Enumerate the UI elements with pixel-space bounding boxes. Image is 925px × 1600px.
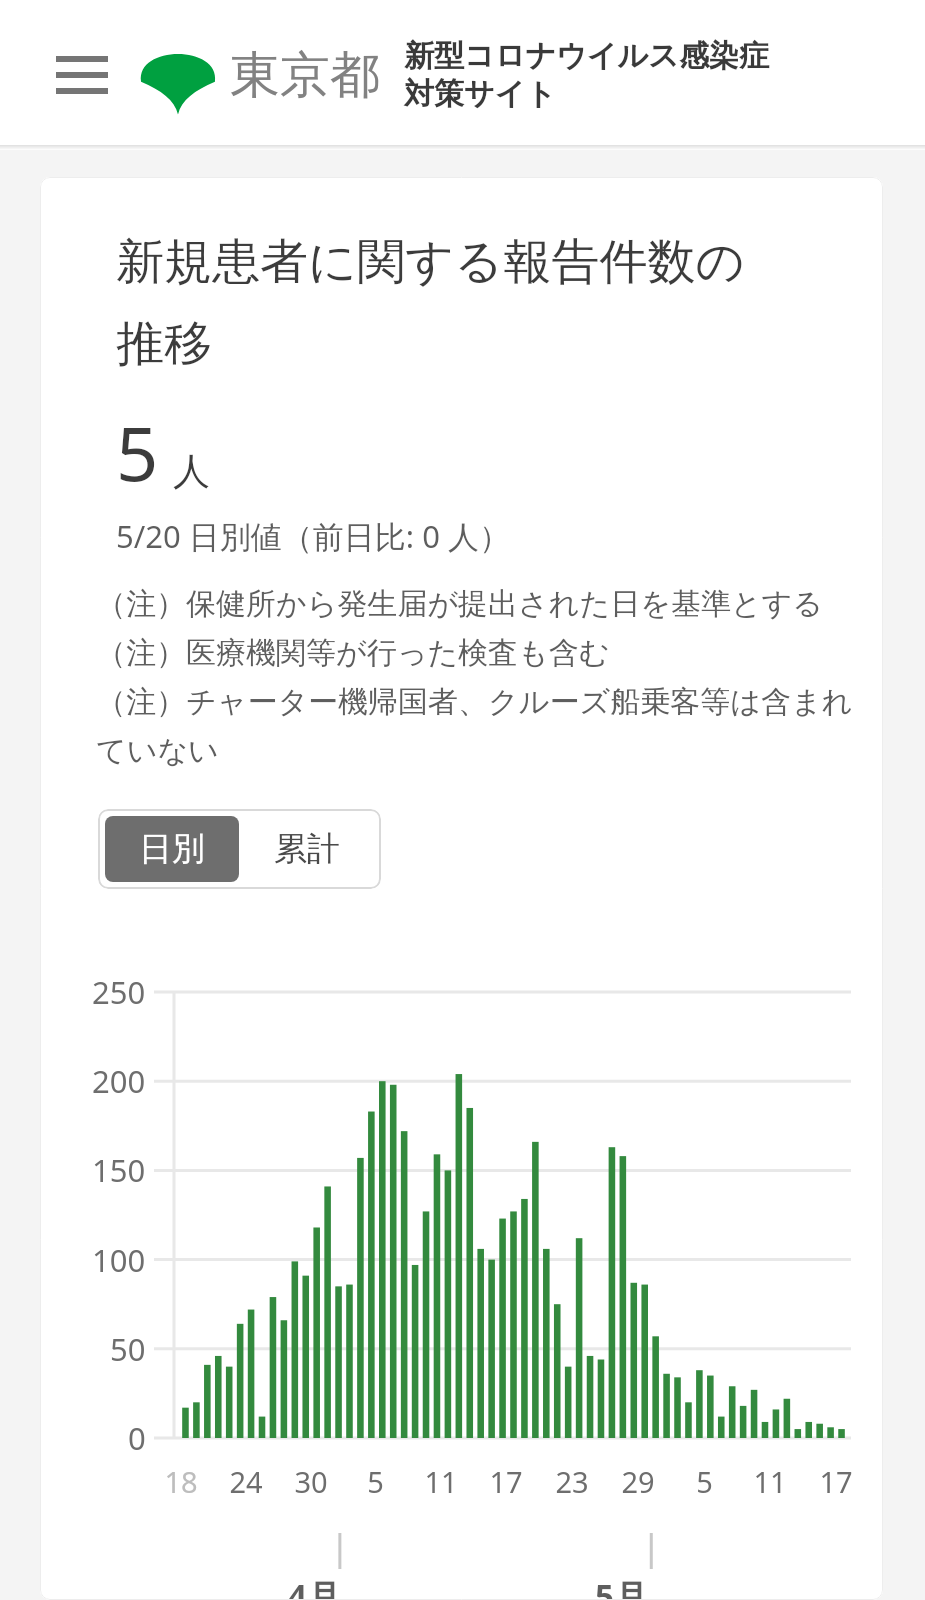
staticText: 24 (229, 1462, 263, 1501)
staticText: 人 (173, 448, 210, 495)
button[interactable]: 累計 (239, 816, 374, 882)
staticText: 東京都 (230, 44, 380, 107)
staticText: 11 (753, 1462, 787, 1501)
staticText: 5 (367, 1462, 384, 1501)
staticText: 5 (116, 402, 159, 503)
staticText: 30 (294, 1462, 328, 1501)
staticText: 0 (128, 1417, 146, 1459)
staticText: 200 (92, 1060, 146, 1102)
staticText: （注）保健所から発生届が提出された日を基準とする （注）医療機関等が行った検査も… (96, 585, 857, 769)
staticText: 29 (621, 1462, 655, 1501)
staticText: 累計 (274, 828, 340, 870)
staticText: 23 (555, 1462, 589, 1501)
staticText: 5月 (595, 1573, 647, 1600)
staticText: 17 (819, 1462, 853, 1501)
staticText: 4月 (288, 1573, 340, 1600)
staticText: 17 (489, 1462, 523, 1501)
staticText: 250 (92, 971, 146, 1013)
button[interactable]: 日別 (105, 816, 239, 882)
staticText: 50 (110, 1328, 146, 1370)
staticText: 新型コロナウイルス感染症 (404, 37, 769, 75)
staticText: 5/20 日別値（前日比: 0 人） (116, 515, 510, 557)
staticText: 11 (424, 1462, 458, 1501)
staticText: 日別 (139, 828, 205, 870)
staticText: 150 (92, 1149, 146, 1191)
staticText: 100 (92, 1239, 146, 1281)
staticText: 対策サイト (404, 75, 557, 113)
staticText: 5 (696, 1462, 713, 1501)
staticText: 新規患者に関する報告件数の 推移 (116, 232, 745, 374)
staticText: 18 (164, 1462, 198, 1501)
button[interactable]: Menu (46, 39, 118, 111)
